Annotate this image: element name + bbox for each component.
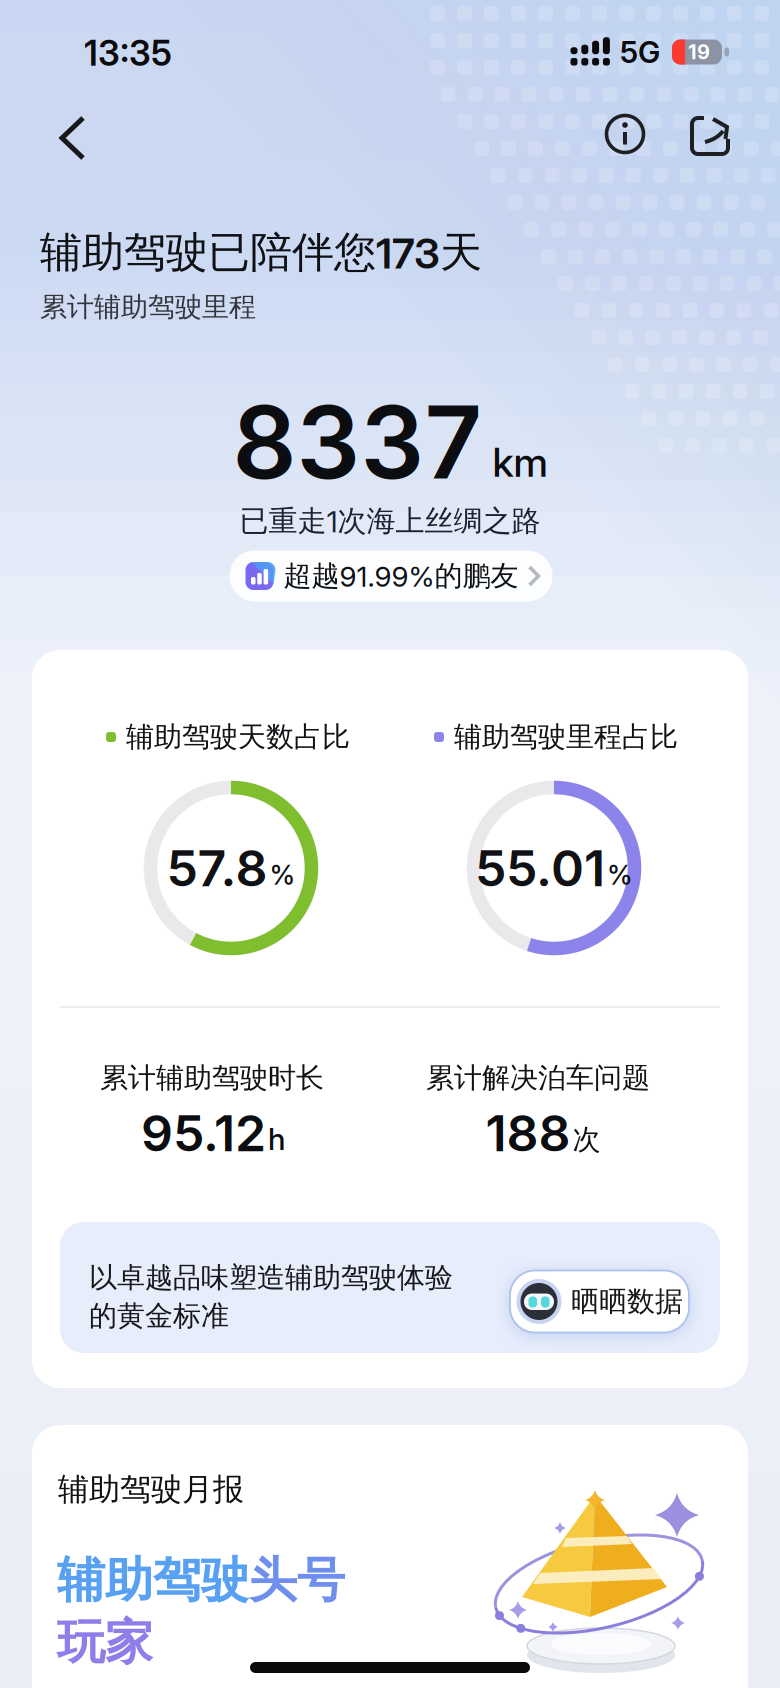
staticText: 晒晒数据 [571,1284,683,1319]
staticText: 55.01 [475,838,605,898]
staticText: 以卓越品味塑造辅助驾驶体验 [89,1260,453,1295]
staticText: 的黄金标准 [89,1298,229,1334]
staticText: 19 [688,40,710,64]
staticText: 8337 [232,381,482,502]
staticText: % [607,859,633,891]
staticText: 累计解决泊车问题 [426,1060,650,1096]
staticText: h [268,1121,285,1157]
staticText: 累计辅助驾驶时长 [100,1060,324,1096]
staticText: 95.12 [141,1103,266,1163]
staticText: 辅助驾驶 [57,1550,249,1610]
staticText: 13:35 [84,32,172,74]
button[interactable]: Back [57,115,91,161]
staticText: 玩家 [57,1612,153,1672]
staticText: 累计辅助驾驶里程 [40,290,256,324]
staticText: 次 [572,1122,600,1157]
staticText: 辅助驾驶月报 [58,1470,244,1509]
button[interactable]: Share [682,108,734,160]
staticText: km [492,438,547,486]
staticText: 57.8 [166,838,267,898]
staticText: 已重走1次海上丝绸之路 [239,503,540,539]
staticText: 辅助驾驶里程占比 [454,719,678,755]
staticText: 头号 [249,1550,345,1610]
button[interactable]: 超越91.99%的鹏友 [229,550,552,601]
staticText: 188 [485,1103,570,1163]
staticText: % [269,859,295,891]
button[interactable]: 晒晒数据 [510,1270,689,1332]
button[interactable]: 辅助驾驶月报 [32,1425,748,1688]
staticText: 辅助驾驶已陪伴您173天 [40,226,482,279]
staticText: 超越91.99%的鹏友 [283,558,518,594]
button[interactable]: Info [603,112,647,156]
staticText: 5G [620,34,660,70]
staticText: 辅助驾驶天数占比 [126,719,350,755]
